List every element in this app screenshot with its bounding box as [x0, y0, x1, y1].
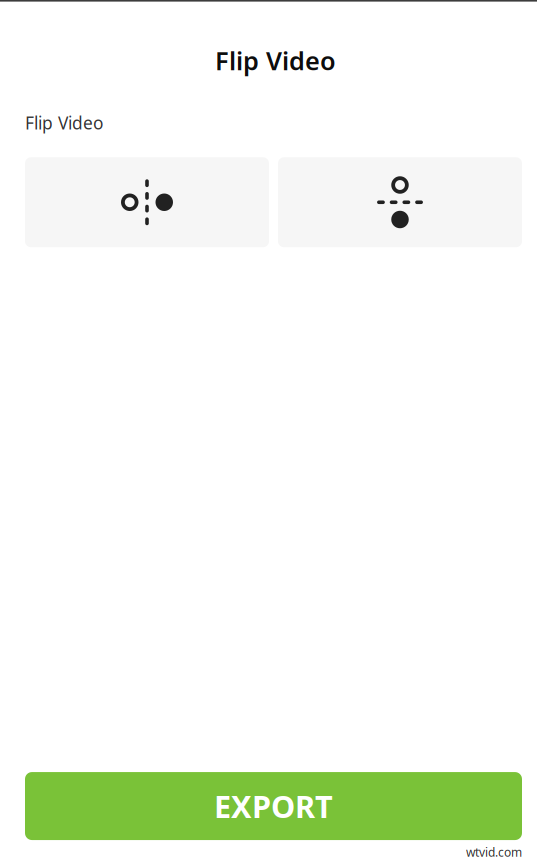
- button[interactable]: Flip vertically: [278, 157, 522, 247]
- staticText: EXPORT: [214, 786, 333, 826]
- staticText: Flip Video: [25, 111, 103, 134]
- button[interactable]: EXPORT: [25, 772, 522, 840]
- staticText: wtvid.com: [466, 844, 522, 860]
- button[interactable]: Flip horizontally: [25, 157, 269, 247]
- staticText: Flip Video: [215, 44, 336, 77]
